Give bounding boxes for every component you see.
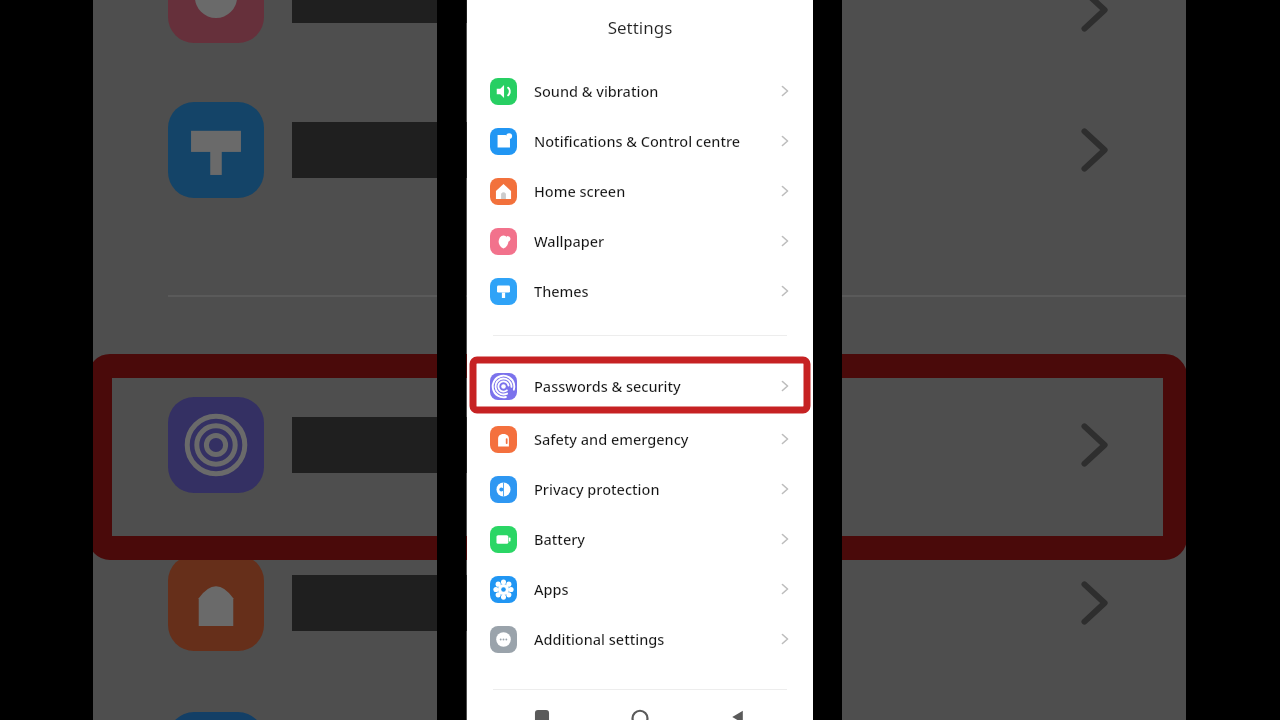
- staticText: Apps: [534, 579, 777, 599]
- button[interactable]: Recents: [519, 690, 565, 720]
- staticText: Home screen: [534, 181, 777, 201]
- button[interactable]: Themes: [467, 266, 813, 316]
- staticText: Notifications & Control centre: [534, 131, 777, 151]
- button[interactable]: Additional settings: [467, 614, 813, 664]
- staticText: Safety and emergency: [534, 429, 777, 449]
- button[interactable]: Notifications & Control centre: [467, 116, 813, 166]
- button[interactable]: Sound & vibration: [467, 66, 813, 116]
- button[interactable]: Privacy protection: [467, 464, 813, 514]
- button[interactable]: Back: [715, 690, 761, 720]
- button[interactable]: Apps: [467, 564, 813, 614]
- staticText: Themes: [534, 281, 777, 301]
- staticText: Battery: [534, 529, 777, 549]
- staticText: Sound & vibration: [534, 81, 777, 101]
- button[interactable]: Home: [617, 690, 663, 720]
- staticText: Additional settings: [534, 629, 777, 649]
- button[interactable]: Passwords & security: [467, 364, 813, 408]
- button[interactable]: Home screen: [467, 166, 813, 216]
- staticText: Settings: [467, 16, 813, 39]
- button[interactable]: Safety and emergency: [467, 414, 813, 464]
- staticText: Wallpaper: [534, 231, 777, 251]
- button[interactable]: Wallpaper: [467, 216, 813, 266]
- staticText: Passwords & security: [534, 376, 777, 396]
- staticText: Privacy protection: [534, 479, 777, 499]
- button[interactable]: Battery: [467, 514, 813, 564]
